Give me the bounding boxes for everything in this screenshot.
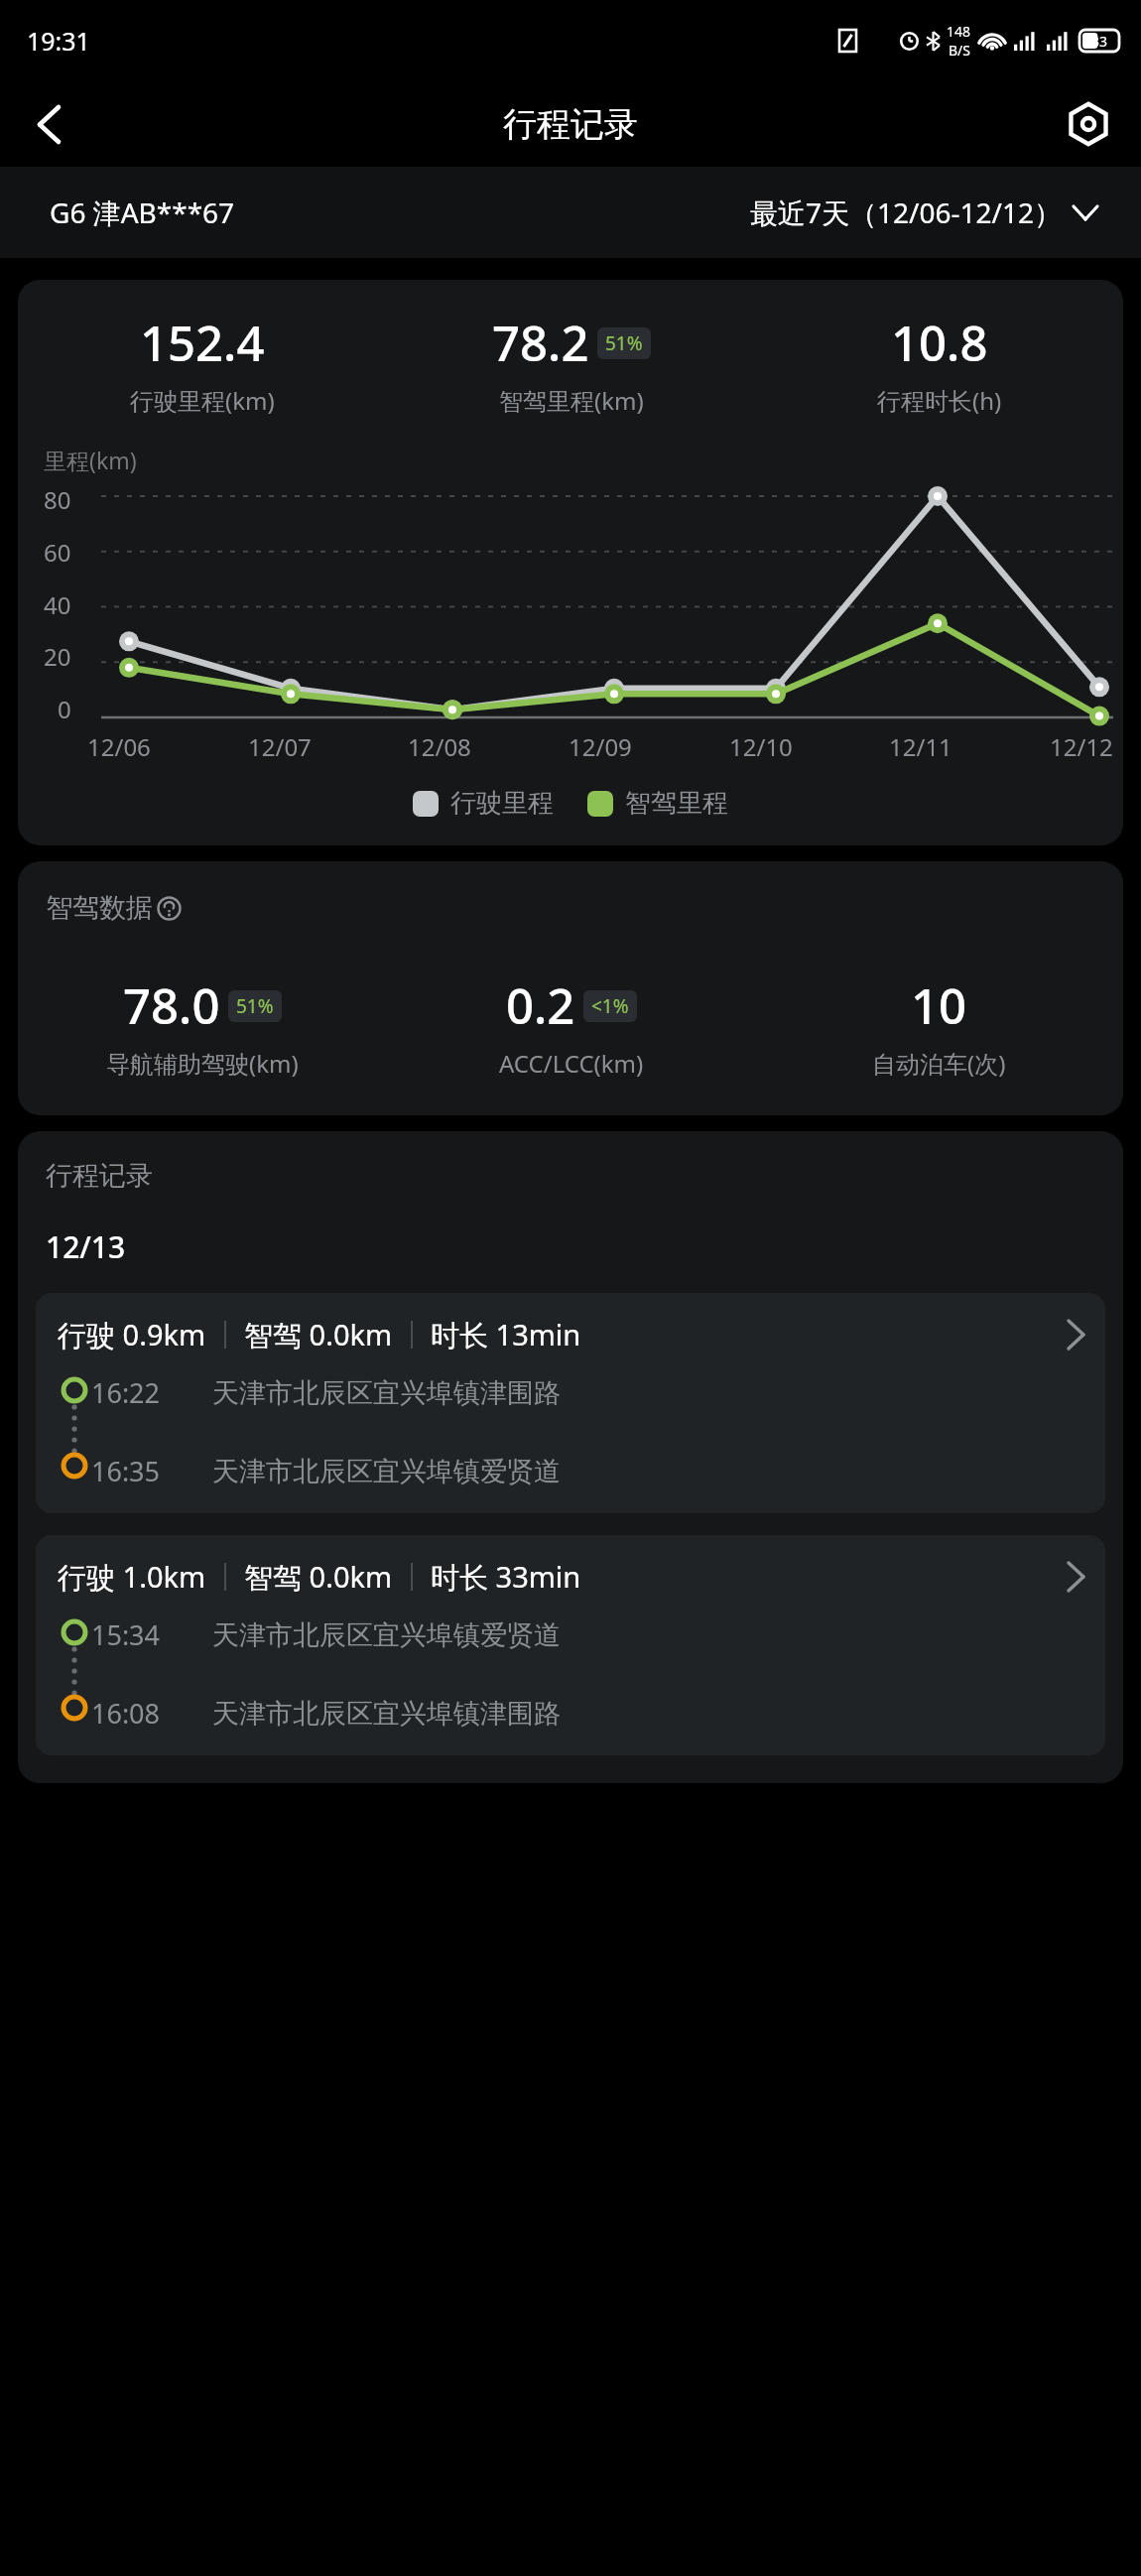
- staticText: 20: [44, 640, 71, 673]
- staticText: 天津市北辰区宜兴埠镇津围路: [212, 1697, 561, 1731]
- button[interactable]: 智驾里程: [587, 787, 728, 820]
- staticText: 10: [911, 972, 967, 1039]
- staticText: 行程时长(h): [877, 384, 1002, 417]
- staticText: 12/08: [408, 730, 471, 763]
- staticText: 行驶里程: [450, 787, 554, 820]
- button[interactable]: G6 津AB***67: [0, 193, 243, 231]
- staticText: 78.0: [123, 972, 220, 1039]
- staticText: 12/13: [46, 1226, 126, 1267]
- staticText: 0: [58, 693, 71, 725]
- staticText: 40: [44, 588, 71, 621]
- staticText: <1%: [591, 993, 629, 1019]
- staticText: 33: [1091, 32, 1108, 51]
- staticText: B/S: [949, 41, 970, 60]
- other: Help: [157, 896, 182, 921]
- staticText: 12/12: [1050, 730, 1113, 763]
- staticText: 51%: [605, 330, 643, 356]
- button[interactable]: 行驶 0.9km: [36, 1293, 1105, 1513]
- staticText: 80: [44, 483, 71, 516]
- staticText: 12/09: [569, 730, 632, 763]
- staticText: 16:35: [91, 1453, 161, 1489]
- staticText: 行驶 0.9km: [58, 1315, 206, 1354]
- button[interactable]: 智驾数据: [46, 891, 182, 925]
- staticText: 天津市北辰区宜兴埠镇津围路: [212, 1376, 561, 1410]
- staticText: 10.8: [891, 310, 988, 376]
- staticText: 智驾里程: [625, 787, 728, 820]
- button[interactable]: 行驶 1.0km: [36, 1535, 1105, 1755]
- staticText: 导航辅助驾驶(km): [106, 1047, 299, 1080]
- staticText: 19:31: [27, 24, 90, 58]
- staticText: 自动泊车(次): [872, 1047, 1006, 1080]
- staticText: 78.2: [492, 310, 589, 376]
- staticText: 51%: [236, 993, 274, 1019]
- staticText: G6 津AB***67: [50, 193, 235, 231]
- button[interactable]: 行驶里程: [413, 787, 554, 820]
- staticText: 12/11: [889, 730, 952, 763]
- staticText: 16:22: [91, 1374, 161, 1411]
- button[interactable]: 最近7天（12/06-12/12）: [750, 193, 1141, 231]
- staticText: ACC/LCC(km): [499, 1047, 644, 1080]
- staticText: 12/07: [248, 730, 312, 763]
- staticText: 12/10: [729, 730, 793, 763]
- staticText: 16:08: [91, 1695, 161, 1732]
- staticText: 15:34: [91, 1616, 161, 1653]
- staticText: 天津市北辰区宜兴埠镇爱贤道: [212, 1455, 561, 1488]
- staticText: 智驾里程(km): [499, 384, 644, 417]
- staticText: 148: [947, 22, 971, 41]
- button[interactable]: Back: [16, 91, 81, 157]
- staticText: 12/06: [87, 730, 151, 763]
- staticText: 行程记录: [503, 103, 638, 146]
- staticText: 152.4: [140, 310, 265, 376]
- staticText: 智驾数据: [46, 891, 153, 925]
- staticText: 60: [44, 536, 71, 569]
- staticText: 行程记录: [46, 1159, 153, 1193]
- staticText: 里程(km): [44, 445, 137, 475]
- staticText: 天津市北辰区宜兴埠镇爱贤道: [212, 1618, 561, 1652]
- staticText: 智驾 0.0km: [244, 1557, 393, 1597]
- staticText: 行驶里程(km): [130, 384, 275, 417]
- button[interactable]: Settings: [1056, 91, 1121, 157]
- staticText: 时长 13min: [431, 1315, 581, 1354]
- staticText: 0.2: [506, 972, 575, 1039]
- staticText: 智驾 0.0km: [244, 1315, 393, 1354]
- staticText: 行驶 1.0km: [58, 1557, 206, 1597]
- staticText: 时长 33min: [431, 1557, 581, 1597]
- staticText: 最近7天（12/06-12/12）: [750, 193, 1062, 231]
